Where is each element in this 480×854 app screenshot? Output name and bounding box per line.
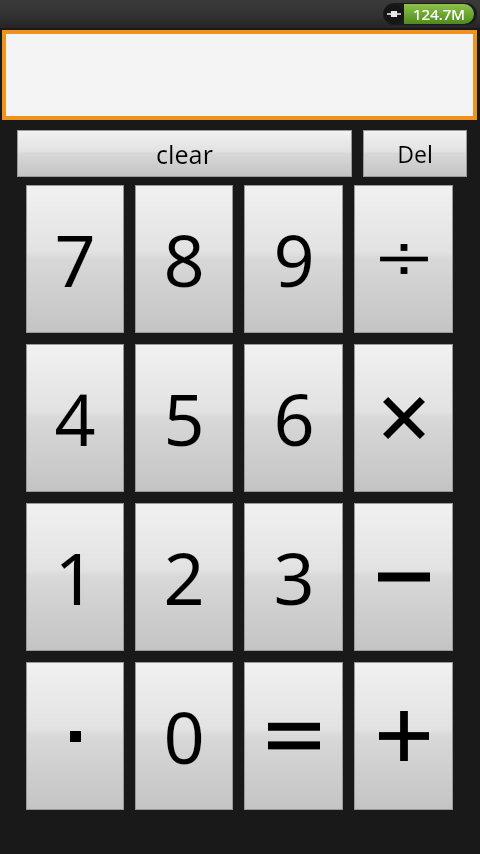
staticText: 6: [273, 369, 315, 467]
staticText: 9: [273, 210, 315, 308]
staticText: 1: [54, 528, 96, 626]
staticText: 7: [54, 210, 96, 308]
button[interactable]: Divide: [355, 186, 452, 332]
staticText: 4: [54, 369, 96, 467]
staticText: 8: [163, 210, 205, 308]
button[interactable]: 5: [136, 345, 232, 491]
button[interactable]: 1: [27, 504, 123, 650]
button[interactable]: Multiply: [355, 345, 452, 491]
staticText: Del: [397, 138, 433, 169]
button[interactable]: 2: [136, 504, 232, 650]
staticText: 5: [163, 369, 205, 467]
button[interactable]: 7: [27, 186, 123, 332]
button[interactable]: 3: [245, 504, 342, 650]
button[interactable]: clear: [18, 131, 351, 176]
button[interactable]: 9: [245, 186, 342, 332]
button[interactable]: 6: [245, 345, 342, 491]
button[interactable]: 0: [136, 663, 232, 809]
staticText: clear: [156, 137, 213, 171]
staticText: 0: [163, 687, 205, 785]
button[interactable]: 8: [136, 186, 232, 332]
button[interactable]: Equals: [245, 663, 342, 809]
button[interactable]: Minus: [355, 504, 452, 650]
button[interactable]: Decimal point: [27, 663, 123, 809]
button[interactable]: Plus: [355, 663, 452, 809]
button[interactable]: Del: [364, 131, 466, 176]
staticText: 2: [163, 528, 205, 626]
staticText: 124.7M: [413, 4, 465, 24]
button[interactable]: 4: [27, 345, 123, 491]
staticText: 3: [273, 528, 315, 626]
